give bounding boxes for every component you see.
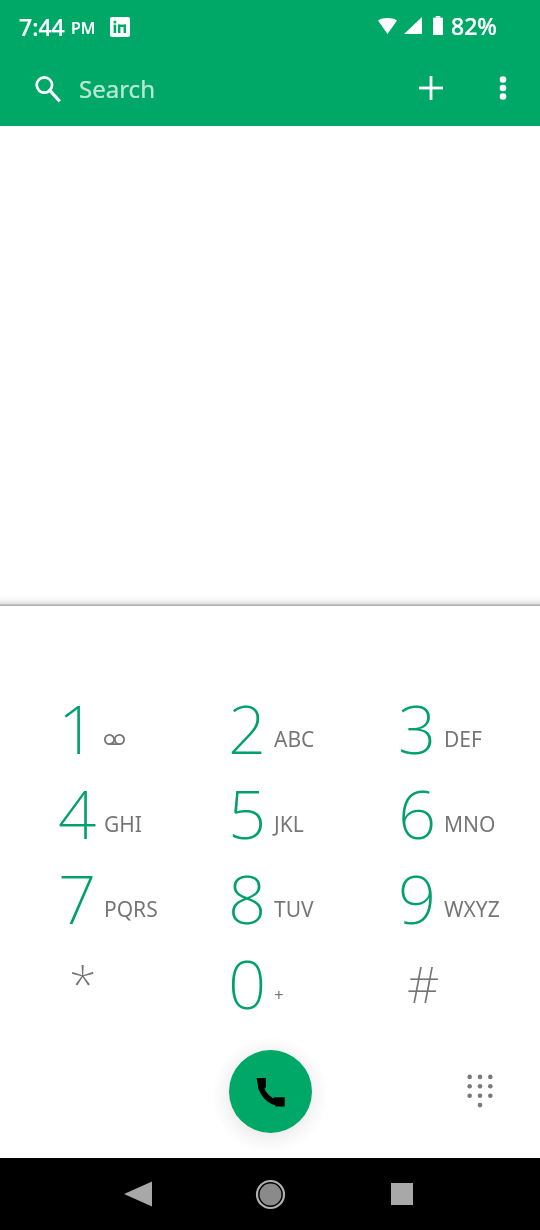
staticText: PQRS	[104, 895, 158, 924]
button[interactable]: 4	[15, 769, 185, 854]
staticText: 2	[228, 682, 267, 767]
staticText: TUV	[274, 895, 314, 924]
other: Search	[34, 75, 60, 101]
staticText: ABC	[274, 725, 315, 754]
button[interactable]: Call	[229, 1050, 312, 1133]
staticText: 82%	[451, 10, 497, 41]
button[interactable]: Show dialpad	[456, 1067, 504, 1115]
button[interactable]: Search	[0, 53, 403, 123]
staticText: PM	[71, 17, 96, 39]
staticText: 0	[228, 937, 267, 1022]
staticText: 1	[58, 682, 97, 767]
staticText: +	[274, 983, 284, 1006]
button[interactable]: #	[355, 939, 525, 1024]
button[interactable]: Recent apps	[336, 1158, 468, 1230]
staticText: MNO	[444, 810, 496, 839]
button[interactable]: Home	[204, 1158, 336, 1230]
button[interactable]: Add contact	[403, 53, 459, 123]
button[interactable]: Back	[72, 1158, 204, 1230]
button[interactable]: 5	[185, 769, 355, 854]
button[interactable]: More options	[475, 53, 531, 123]
staticText: DEF	[444, 725, 482, 754]
staticText: 7	[58, 852, 97, 937]
staticText: #	[407, 950, 440, 1018]
staticText: 7:44	[19, 11, 65, 42]
staticText: 6	[398, 767, 437, 852]
button[interactable]: 9	[355, 854, 525, 939]
button[interactable]: 8	[185, 854, 355, 939]
button[interactable]: 3	[355, 684, 525, 769]
staticText: 5	[228, 767, 267, 852]
button[interactable]: 6	[355, 769, 525, 854]
staticText: WXYZ	[444, 895, 500, 924]
staticText: Search	[79, 72, 155, 105]
staticText: 8	[228, 852, 267, 937]
button[interactable]: 7	[15, 854, 185, 939]
staticText: 9	[398, 852, 437, 937]
staticText: 3	[398, 682, 437, 767]
staticText: *	[69, 950, 97, 1018]
button[interactable]: 2	[185, 684, 355, 769]
button[interactable]: *	[15, 939, 185, 1024]
button[interactable]: 1	[15, 684, 185, 769]
staticText: 4	[58, 767, 97, 852]
staticText: GHI	[104, 810, 142, 839]
staticText: JKL	[274, 810, 304, 839]
button[interactable]: 0	[185, 939, 355, 1024]
